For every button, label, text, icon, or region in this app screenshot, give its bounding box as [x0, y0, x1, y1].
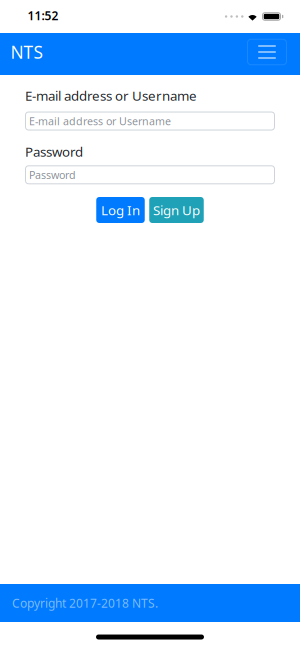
staticText: Log In [101, 201, 140, 219]
staticText: Copyright 2017-2018 NTS. [12, 595, 158, 611]
staticText: E-mail address or Username [25, 87, 197, 104]
staticText: Password [29, 168, 76, 182]
staticText: E-mail address or Username [29, 114, 171, 128]
staticText: 11:52 [27, 7, 58, 23]
staticText: Sign Up [153, 201, 200, 219]
staticText: Password [25, 143, 83, 160]
button[interactable]: Menu [247, 39, 287, 65]
staticText: NTS [10, 40, 43, 63]
button[interactable]: Log In [96, 197, 145, 223]
button[interactable]: Sign Up [149, 197, 204, 223]
